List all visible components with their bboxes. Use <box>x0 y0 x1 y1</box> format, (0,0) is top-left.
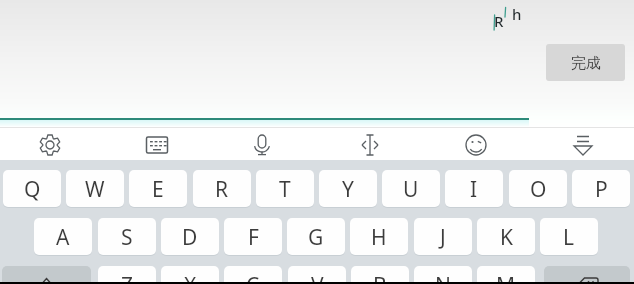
button[interactable]: G <box>287 218 345 255</box>
staticText: H <box>371 223 387 252</box>
staticText: Q <box>24 175 41 204</box>
button[interactable]: T <box>256 170 314 207</box>
button[interactable]: R <box>193 170 251 207</box>
button[interactable]: S <box>98 218 156 255</box>
staticText: R <box>215 175 229 204</box>
button[interactable]: Voice input <box>242 128 282 161</box>
staticText: W <box>85 175 105 204</box>
button[interactable]: Shift <box>2 266 91 284</box>
button[interactable]: Hide keyboard <box>563 128 603 161</box>
button[interactable]: H <box>350 218 408 255</box>
button[interactable]: P <box>572 170 630 207</box>
button[interactable]: Q <box>3 170 61 207</box>
button[interactable]: Y <box>319 170 377 207</box>
button[interactable]: O <box>509 170 567 207</box>
button[interactable]: V <box>288 266 346 284</box>
staticText: S <box>121 223 133 252</box>
staticText: R <box>494 11 504 31</box>
button[interactable]: K <box>477 218 535 255</box>
button[interactable]: Settings <box>30 128 70 161</box>
button[interactable]: E <box>129 170 187 207</box>
button[interactable]: X <box>161 266 219 284</box>
staticText: B <box>373 271 387 284</box>
staticText: O <box>530 175 547 204</box>
staticText: Z <box>121 271 134 284</box>
button[interactable]: B <box>351 266 409 284</box>
button[interactable]: J <box>414 218 472 255</box>
staticText: C <box>246 271 260 284</box>
staticText: I <box>470 175 478 204</box>
button[interactable]: Keyboard <box>137 128 177 161</box>
staticText: h <box>512 4 522 24</box>
button[interactable]: F <box>224 218 282 255</box>
staticText: A <box>56 223 70 252</box>
staticText: G <box>308 223 324 252</box>
staticText: Y <box>342 175 354 204</box>
staticText: L <box>563 223 575 252</box>
staticText: V <box>311 271 324 284</box>
staticText: J <box>440 223 446 252</box>
staticText: F <box>248 223 259 252</box>
button[interactable]: N <box>414 266 472 284</box>
button[interactable]: I <box>445 170 503 207</box>
staticText: X <box>184 271 197 284</box>
button[interactable]: U <box>382 170 440 207</box>
button[interactable]: 完成 <box>546 44 625 81</box>
button[interactable]: W <box>66 170 124 207</box>
staticText: T <box>279 175 291 204</box>
staticText: E <box>152 175 164 204</box>
button[interactable]: Backspace <box>544 266 630 284</box>
staticText: M <box>496 271 516 284</box>
button[interactable]: L <box>540 218 598 255</box>
staticText: 完成 <box>571 54 601 73</box>
staticText: N <box>435 271 451 284</box>
button[interactable]: M <box>477 266 535 284</box>
button[interactable]: Emoji <box>456 128 496 161</box>
button[interactable]: Move cursor <box>350 128 390 161</box>
button[interactable]: C <box>224 266 282 284</box>
button[interactable]: D <box>161 218 219 255</box>
button[interactable]: Z <box>98 266 156 284</box>
button[interactable]: A <box>34 218 92 255</box>
staticText: U <box>403 175 419 204</box>
staticText: P <box>595 175 608 204</box>
staticText: K <box>500 223 513 252</box>
staticText: D <box>182 223 198 252</box>
